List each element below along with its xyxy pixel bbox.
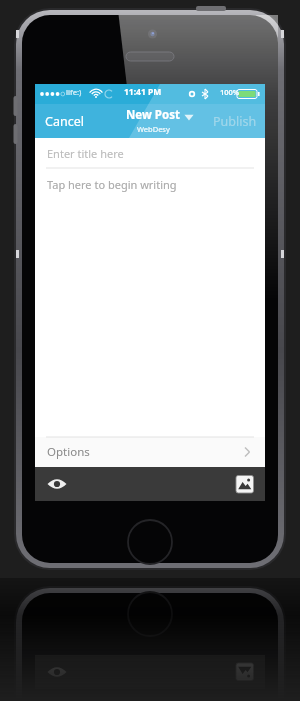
staticText: Cancel [45,113,84,130]
button[interactable]: New Post [118,107,188,137]
button[interactable]: Cancel [39,108,97,134]
staticText: 11:41 PM [124,86,162,98]
button[interactable]: Tap here to begin writing [35,169,265,517]
button[interactable]: Preview [42,470,72,498]
button[interactable]: Enter title here [35,138,265,168]
staticText: Options [47,444,90,460]
staticText: Enter title here [47,146,124,161]
button[interactable]: Options [35,437,265,467]
button[interactable]: Publish [206,108,262,134]
staticText: 100% [220,87,240,97]
button[interactable]: Insert image [231,470,259,498]
staticText: Tap here to begin writing [47,177,177,192]
staticText: New Post [126,107,180,123]
staticText: life:) [66,87,82,97]
staticText: Publish [213,113,257,130]
staticText: WebDesy [137,124,170,134]
